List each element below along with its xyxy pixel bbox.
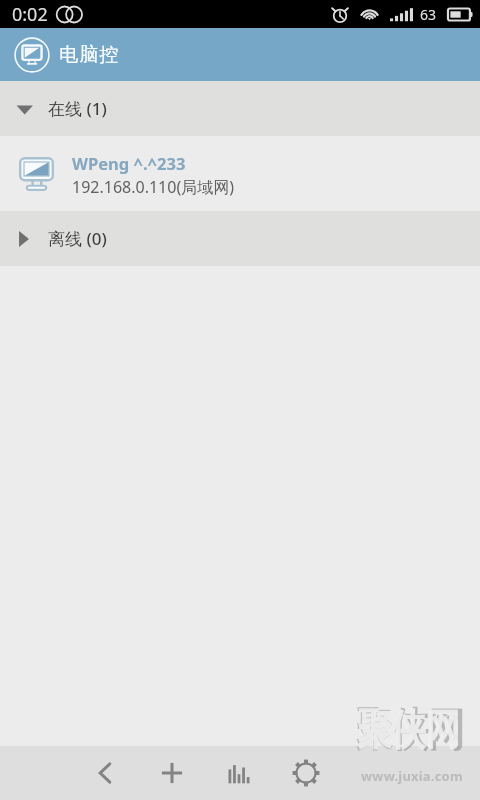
staticText: 在线 (1) [48,97,107,120]
button[interactable]: 在线 (1) [0,81,480,136]
button[interactable]: Add [160,746,184,800]
button[interactable]: Back [93,746,117,800]
button[interactable]: WPeng ^.^233 [0,136,480,211]
staticText: 聚侠网 [356,702,464,759]
button[interactable]: 电脑控 [14,37,50,73]
staticText: 63 [420,5,437,24]
staticText: 192.168.0.110(局域网) [72,176,234,198]
button[interactable]: Stats [227,746,251,800]
button[interactable]: 离线 (0) [0,211,480,266]
staticText: www.juxia.com [361,767,463,785]
staticText: 0:02 [12,2,48,27]
staticText: 聚侠网 [357,704,459,757]
button[interactable]: Settings [294,746,318,800]
staticText: 电脑控 [59,43,120,67]
staticText: WPeng ^.^233 [72,152,186,174]
staticText: 离线 (0) [48,227,107,250]
